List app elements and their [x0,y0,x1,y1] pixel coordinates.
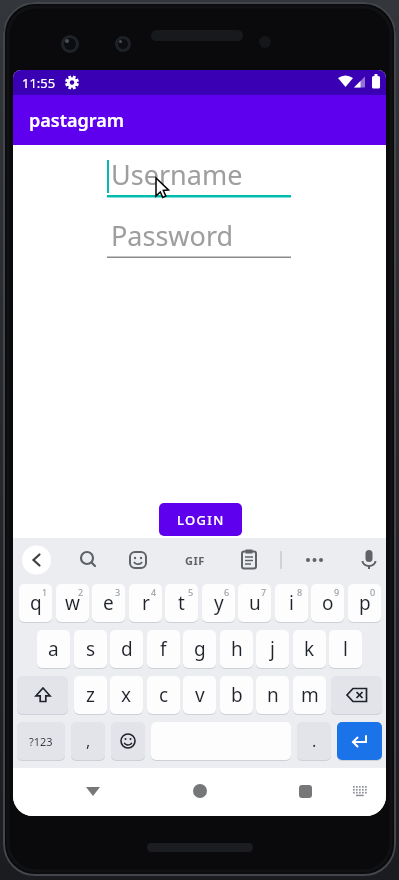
button[interactable]: s [74,630,107,668]
staticText: 3 [115,586,121,598]
staticText: 8 [297,586,303,598]
button[interactable]: x [110,676,143,714]
staticText: LOGIN [177,511,225,529]
button[interactable]: Password [107,210,291,258]
button[interactable]: g [183,630,216,668]
button[interactable]: v [183,676,216,714]
staticText: 1 [42,586,48,598]
button[interactable]: j [256,630,289,668]
staticText: 6 [224,586,230,598]
staticText: 7 [261,586,267,598]
button[interactable] [184,775,216,807]
staticText: d [121,636,133,662]
button[interactable]: n [256,676,289,714]
staticText: Password [111,217,234,254]
button[interactable]: o [311,584,344,622]
button[interactable]: r [129,584,162,622]
staticText: f [160,636,167,662]
staticText: 11:55 [22,74,56,92]
staticText: 0 [370,586,376,598]
staticText: o [322,590,334,616]
button[interactable] [289,775,321,807]
button[interactable] [17,676,68,714]
staticText: e [103,590,114,616]
button[interactable]: LOGIN [159,503,242,536]
staticText: s [86,636,96,662]
staticText: h [231,636,243,662]
staticText: ?123 [29,734,53,749]
staticText: . [312,730,317,752]
staticText: g [194,636,206,662]
staticText: 4 [151,586,157,598]
button[interactable]: k [293,630,326,668]
staticText: r [142,590,150,616]
button[interactable]: u [238,584,271,622]
button[interactable]: w [56,584,89,622]
button[interactable]: ?123 [17,722,65,760]
staticText: w [65,590,80,616]
staticText: 9 [334,586,340,598]
button[interactable]: . [297,722,331,760]
button[interactable]: d [110,630,143,668]
staticText: pastagram [29,108,125,133]
staticText: Username [111,156,243,193]
staticText: m [301,682,319,708]
button[interactable] [337,722,382,760]
staticText: t [178,590,185,616]
button[interactable] [347,778,373,804]
button[interactable]: c [147,676,180,714]
button[interactable]: h [220,630,253,668]
staticText: p [359,590,371,616]
button[interactable]: z [74,676,107,714]
staticText: q [30,590,42,616]
button[interactable]: t [165,584,198,622]
button[interactable] [331,676,382,714]
button[interactable]: i [275,584,308,622]
staticText: z [86,682,95,708]
staticText: b [231,682,243,708]
button[interactable] [77,775,109,807]
staticText: c [159,682,169,708]
staticText: , [86,730,91,752]
button[interactable]: y [202,584,235,622]
button[interactable]: , [71,722,105,760]
button[interactable] [111,722,145,760]
staticText: l [343,636,348,662]
staticText: a [48,636,59,662]
button[interactable]: Username [107,150,291,197]
staticText: i [289,590,294,616]
staticText: 2 [78,586,84,598]
staticText: v [195,682,205,708]
button[interactable]: a [37,630,70,668]
staticText: GIF [185,553,205,568]
staticText: j [270,636,275,662]
staticText: x [121,682,132,708]
staticText: 5 [188,586,194,598]
button[interactable]: p [348,584,381,622]
staticText: n [267,682,279,708]
button[interactable]: b [220,676,253,714]
button[interactable]: e [92,584,125,622]
button[interactable]: q [19,584,52,622]
staticText: k [304,636,315,662]
button[interactable]: f [147,630,180,668]
button[interactable]: l [329,630,362,668]
staticText: u [249,590,261,616]
staticText: y [214,590,224,616]
button[interactable]: m [293,676,326,714]
